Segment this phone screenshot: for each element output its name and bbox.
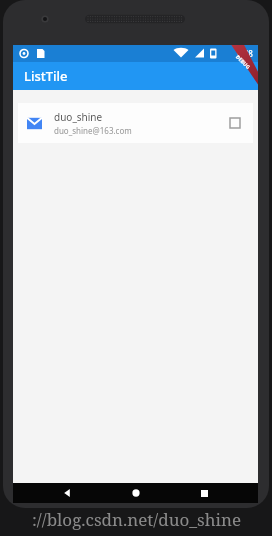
staticText: ListTile	[24, 67, 68, 85]
staticText: 9:48	[237, 48, 253, 59]
button[interactable]: Back	[52, 483, 82, 503]
button[interactable]: Home	[121, 483, 151, 503]
button[interactable]: Recent apps	[189, 483, 219, 503]
staticText: DEBUG	[234, 54, 252, 71]
staticText: ://blog.csdn.net/duo_shine	[32, 508, 241, 531]
staticText: duo_shine@163.com	[54, 125, 132, 136]
button[interactable]: Select duo_shine	[226, 114, 244, 132]
button[interactable]: duo_shine	[18, 103, 253, 143]
staticText: duo_shine	[54, 110, 103, 124]
